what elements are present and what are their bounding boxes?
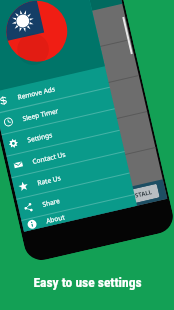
button[interactable]: Europa FM xyxy=(4,112,155,180)
button[interactable]: Sleep Timer xyxy=(0,88,115,134)
staticText: Easy to use settings xyxy=(33,274,142,290)
button[interactable]: Kiss FM xyxy=(0,4,130,72)
button[interactable]: Settings xyxy=(2,109,120,156)
staticText: Radio Zu xyxy=(0,70,38,90)
staticText: Europa FM xyxy=(16,140,62,162)
button[interactable]: Pro FM xyxy=(0,76,147,144)
staticText: Digi FM xyxy=(23,177,57,196)
staticText: Rate Us xyxy=(36,173,62,187)
staticText: Pro FM xyxy=(7,108,39,126)
staticText: Top 40 xyxy=(2,87,22,99)
staticText: ZU Radio xyxy=(1,9,38,27)
staticText: Share xyxy=(41,196,61,209)
staticText: INSTALL xyxy=(127,188,153,201)
button[interactable]: Digi FM xyxy=(12,148,163,212)
staticText: Settings xyxy=(26,130,54,144)
button[interactable]: About xyxy=(22,195,137,232)
button[interactable]: INSTALL xyxy=(121,184,160,206)
button[interactable]: Share xyxy=(17,173,134,220)
staticText: Hits xyxy=(10,124,24,135)
staticText: Kiss FM xyxy=(0,35,24,54)
button[interactable]: Remove Ads xyxy=(0,66,110,113)
staticText: Bucuresti xyxy=(0,49,22,63)
button[interactable]: Rate Us xyxy=(12,152,129,199)
staticText: Contact Us xyxy=(31,150,67,166)
staticText: Remove Ads xyxy=(17,84,57,102)
staticText: About xyxy=(45,212,66,225)
button[interactable]: Radio Zu xyxy=(0,40,139,108)
staticText: Station xyxy=(18,159,40,171)
staticText: News xyxy=(26,194,44,205)
staticText: Sleep Timer xyxy=(22,106,60,123)
button[interactable]: Contact Us xyxy=(7,131,124,177)
